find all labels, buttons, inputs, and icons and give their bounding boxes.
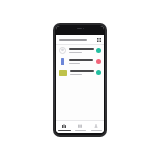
button[interactable]: Browse <box>72 121 88 133</box>
button[interactable]: Action <box>96 59 101 64</box>
other: Account <box>94 124 98 128</box>
other: Browse <box>78 124 82 128</box>
other: Library <box>62 124 66 128</box>
button[interactable]: View options <box>97 38 101 42</box>
button[interactable]: Action <box>56 67 104 78</box>
button[interactable]: Action <box>96 70 101 75</box>
button[interactable]: Library <box>56 121 72 133</box>
button[interactable]: View options <box>59 35 101 44</box>
button[interactable]: Action <box>56 45 104 56</box>
button[interactable]: Action <box>96 48 101 53</box>
button[interactable]: Account <box>88 121 104 133</box>
button[interactable]: Action <box>56 56 104 67</box>
